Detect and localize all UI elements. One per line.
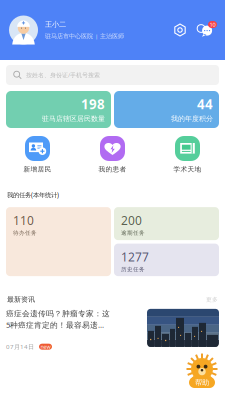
button[interactable]: 110 bbox=[6, 207, 111, 276]
staticText: 帮助 bbox=[195, 378, 209, 387]
staticText: 最新资讯 bbox=[7, 295, 35, 304]
staticText: 待办任务 bbox=[13, 229, 37, 237]
staticText: 我的任务(本年统计) bbox=[7, 190, 59, 199]
button[interactable]: 帮助 bbox=[183, 352, 221, 396]
staticText: 癌症会遗传吗？肿瘤专家：这 bbox=[6, 309, 110, 319]
staticText: new bbox=[40, 343, 50, 350]
button[interactable]: 198 bbox=[6, 91, 111, 128]
staticText: 200 bbox=[121, 212, 142, 228]
staticText: 44 bbox=[197, 95, 213, 113]
button[interactable]: 学术天地 bbox=[150, 136, 225, 173]
staticText: 按姓名、身份证/手机号搜索 bbox=[26, 71, 100, 79]
staticText: 王小二 bbox=[45, 20, 66, 29]
button[interactable]: 更多 bbox=[206, 296, 218, 303]
staticText: 198 bbox=[81, 95, 105, 113]
button[interactable]: 44 bbox=[114, 91, 219, 128]
staticText: 10 bbox=[209, 21, 215, 28]
button[interactable]: 癌症会遗传吗？肿瘤专家：这 bbox=[0, 309, 225, 351]
staticText: 5种癌症肯定的！最容易遗... bbox=[6, 320, 104, 330]
staticText: 逾期任务 bbox=[121, 229, 145, 237]
staticText: 1277 bbox=[121, 249, 149, 265]
staticText: 学术天地 bbox=[173, 165, 201, 173]
button[interactable]: 设置 bbox=[169, 19, 191, 41]
staticText: 新增居民 bbox=[23, 165, 51, 173]
button[interactable]: 消息 bbox=[194, 19, 218, 41]
staticText: 我的年度积分 bbox=[171, 114, 213, 123]
button[interactable]: 新增居民 bbox=[0, 136, 75, 173]
button[interactable]: 1277 bbox=[114, 244, 219, 276]
staticText: 驻马店市中心医院 | 主治医师 bbox=[45, 32, 124, 40]
staticText: 我的患者 bbox=[98, 165, 126, 173]
button[interactable]: 200 bbox=[114, 207, 219, 240]
staticText: 110 bbox=[13, 212, 34, 228]
staticText: 07月14日 bbox=[6, 342, 34, 351]
staticText: 更多 bbox=[206, 296, 218, 303]
staticText: 历史任务 bbox=[121, 266, 145, 273]
button[interactable]: 我的患者 bbox=[75, 136, 150, 173]
button[interactable]: 按姓名、身份证/手机号搜索 bbox=[6, 65, 219, 85]
staticText: 驻马店辖区居民数量 bbox=[42, 114, 105, 123]
